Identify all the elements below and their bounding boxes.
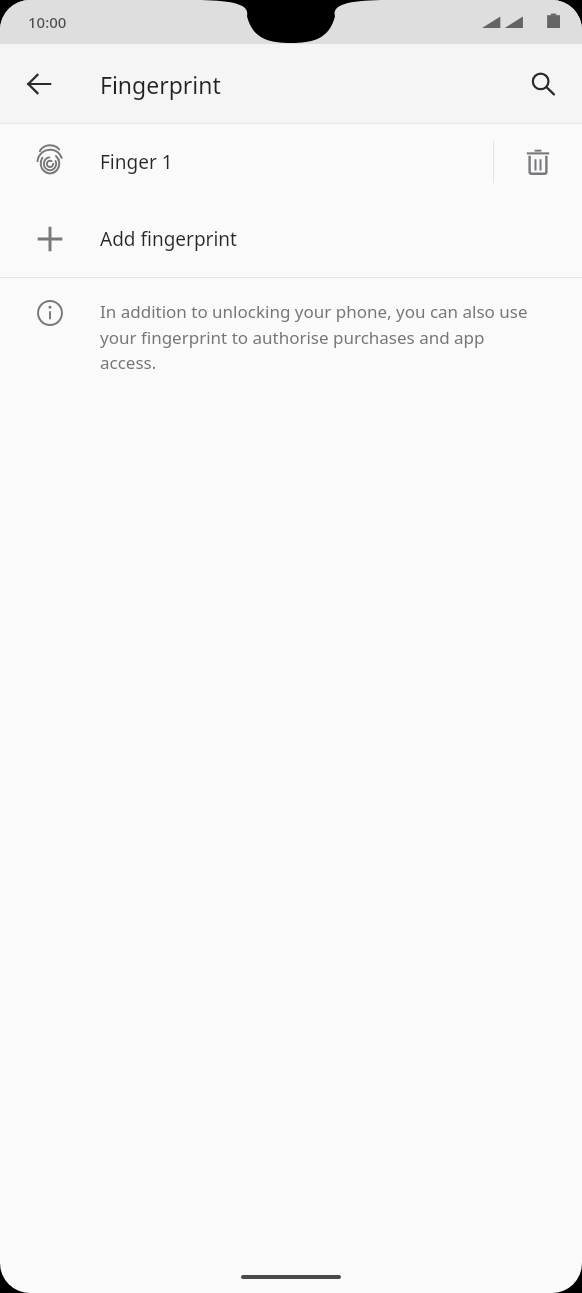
button[interactable]: Search <box>516 57 570 111</box>
button[interactable]: Back <box>12 57 66 111</box>
button[interactable]: Finger 1 <box>0 124 582 200</box>
staticText: Finger 1 <box>100 149 493 175</box>
staticText: In addition to unlocking your phone, you… <box>100 300 538 374</box>
staticText: Add fingerprint <box>100 226 582 252</box>
staticText: 10:00 <box>28 12 67 32</box>
staticText: Fingerprint <box>100 69 221 100</box>
button[interactable]: Delete fingerprint <box>494 124 582 200</box>
button[interactable]: Add fingerprint <box>0 201 582 277</box>
